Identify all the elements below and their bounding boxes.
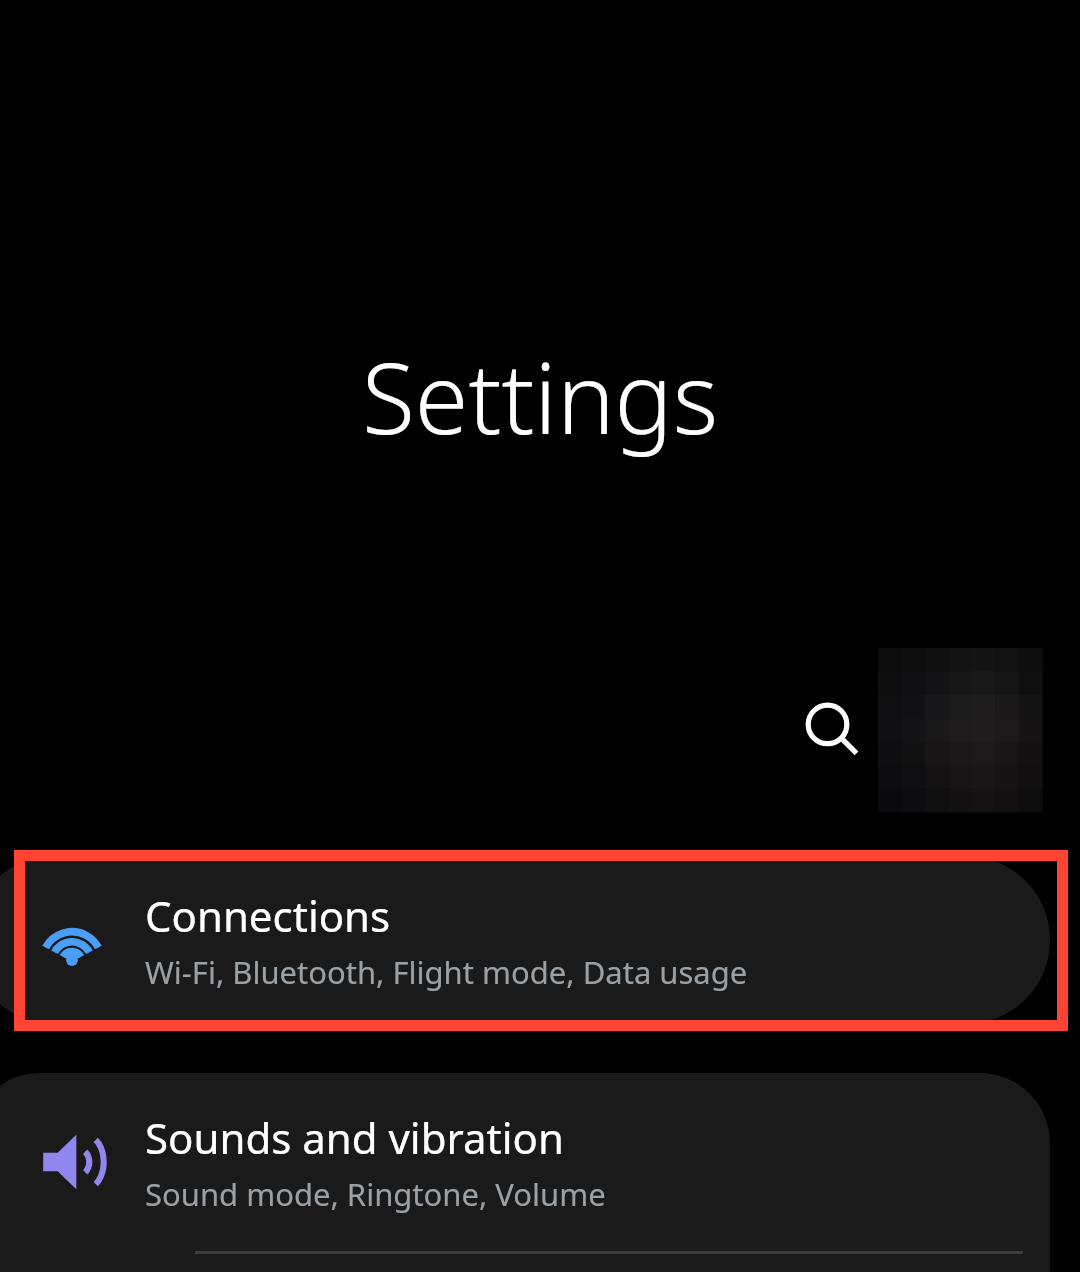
- staticText: Connections: [145, 887, 391, 944]
- staticText: Sounds and vibration: [145, 1109, 564, 1166]
- staticText: Settings: [0, 330, 1080, 462]
- staticText: Wi-Fi, Bluetooth, Flight mode, Data usag…: [145, 951, 748, 993]
- staticText: Sound mode, Ringtone, Volume: [145, 1173, 606, 1215]
- button[interactable]: Search settings: [786, 684, 878, 776]
- button[interactable]: Connections: [0, 856, 1050, 1024]
- button[interactable]: Sounds and vibration: [0, 1073, 1050, 1272]
- button[interactable]: Account profile: [878, 648, 1042, 812]
